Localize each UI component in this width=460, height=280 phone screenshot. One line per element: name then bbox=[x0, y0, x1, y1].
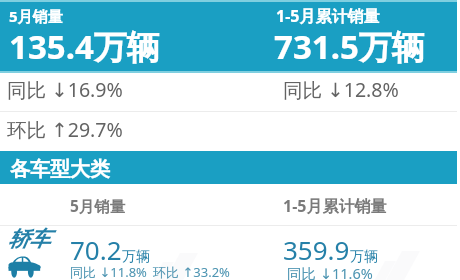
staticText: 轿车 bbox=[8, 226, 50, 252]
staticText: 环比 ↑33.2% bbox=[153, 263, 230, 280]
staticText: 各车型大类 bbox=[10, 157, 110, 182]
staticText: 同比 ↓11.8% bbox=[70, 263, 147, 280]
other: 轿车 bbox=[7, 255, 41, 279]
staticText: 环比 ↑29.7% bbox=[7, 116, 123, 143]
staticText: 1-5月累计销量 bbox=[283, 195, 387, 217]
staticText: 1-5月累计销量 bbox=[276, 5, 380, 27]
staticText: 5月销量 bbox=[9, 6, 63, 26]
staticText: 万辆 bbox=[122, 248, 150, 266]
staticText: 70.2 bbox=[70, 232, 122, 267]
staticText: 731.5万辆 bbox=[274, 24, 425, 69]
staticText: 135.4万辆 bbox=[9, 24, 160, 69]
staticText: 359.9 bbox=[283, 232, 350, 267]
staticText: 万辆 bbox=[350, 248, 378, 266]
staticText: 同比 ↓16.9% bbox=[7, 76, 123, 103]
staticText: 5月销量 bbox=[70, 195, 126, 216]
staticText: 同比 ↓12.8% bbox=[283, 76, 399, 103]
staticText: 同比 ↓11.6% bbox=[287, 263, 373, 280]
